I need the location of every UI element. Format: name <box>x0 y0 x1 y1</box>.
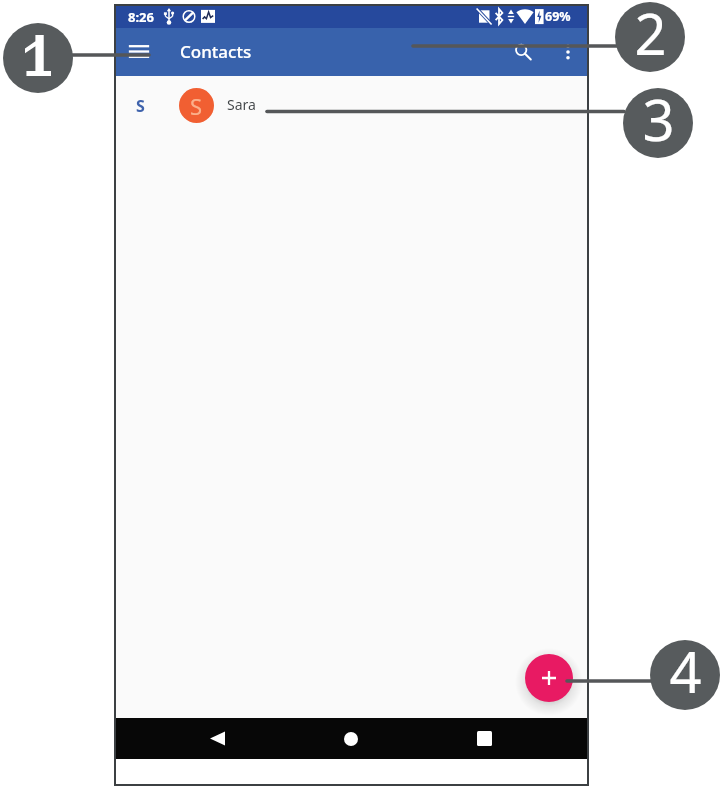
button[interactable]: More options <box>553 37 583 67</box>
button[interactable]: Home <box>329 718 373 759</box>
button[interactable]: S <box>115 76 588 134</box>
staticText: Sara <box>227 95 256 114</box>
button[interactable]: Back <box>195 718 239 759</box>
staticText: 69% <box>545 8 571 25</box>
button[interactable]: Add contact <box>525 654 573 702</box>
staticText: S <box>136 95 145 117</box>
button[interactable]: Open navigation menu <box>123 36 155 68</box>
button[interactable]: Recent apps <box>462 718 506 759</box>
button[interactable]: Search <box>505 34 541 70</box>
staticText: Contacts <box>180 40 252 63</box>
staticText: 4 <box>669 640 702 703</box>
staticText: 8:26 <box>128 8 154 26</box>
staticText: 3 <box>642 88 675 151</box>
staticText: 2 <box>634 2 667 65</box>
staticText: S <box>190 91 203 121</box>
